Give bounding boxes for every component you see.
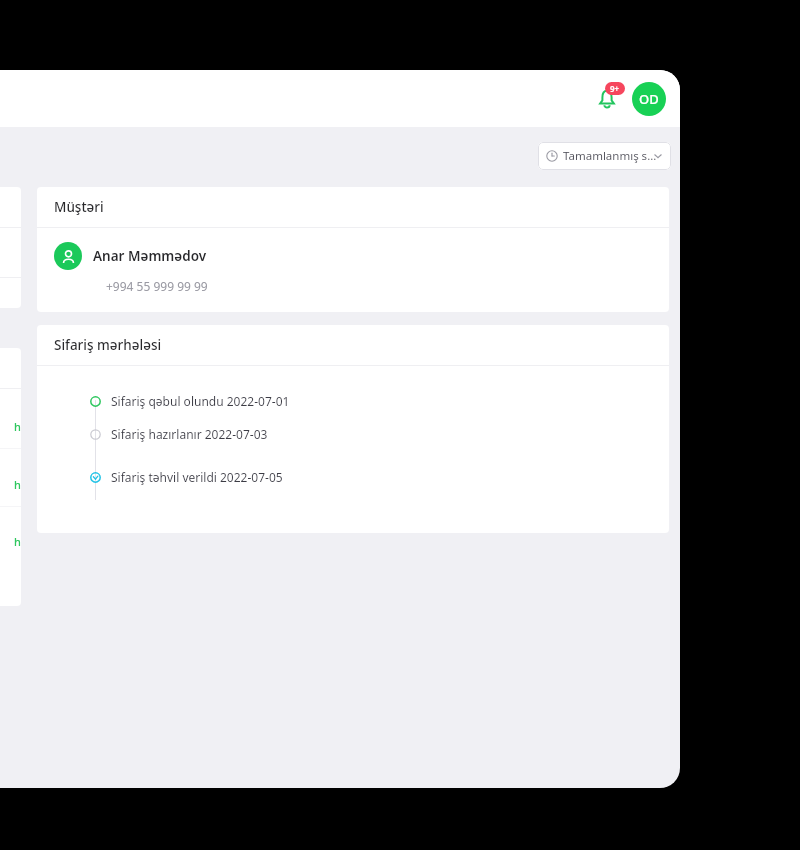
staticText: h bbox=[14, 534, 21, 549]
staticText: OD bbox=[639, 90, 659, 108]
staticText: Tamamlanmış s... bbox=[563, 148, 657, 164]
staticText: Sifariş hazırlanır 2022-07-03 bbox=[111, 426, 268, 442]
button[interactable]: Anar Məmmədov bbox=[54, 242, 669, 294]
button[interactable]: Notifications bbox=[588, 80, 626, 118]
staticText: Müştəri bbox=[54, 198, 104, 216]
staticText: 9+ bbox=[610, 83, 620, 94]
staticText: Sifariş mərhələsi bbox=[54, 336, 162, 354]
staticText: Sifariş qəbul olundu 2022-07-01 bbox=[111, 393, 290, 409]
staticText: +994 55 999 99 99 bbox=[106, 278, 208, 294]
staticText: h bbox=[14, 477, 21, 492]
button[interactable]: Sifariş təhvil verildi 2022-07-05 bbox=[89, 467, 283, 487]
button[interactable]: Tamamlanmış s... bbox=[538, 142, 671, 170]
staticText: h bbox=[14, 419, 21, 434]
staticText: Sifariş təhvil verildi 2022-07-05 bbox=[111, 469, 283, 485]
button[interactable]: Sifariş qəbul olundu 2022-07-01 bbox=[89, 391, 290, 411]
button[interactable]: OD bbox=[632, 82, 666, 116]
staticText: Anar Məmmədov bbox=[93, 247, 207, 265]
button[interactable]: Sifariş hazırlanır 2022-07-03 bbox=[89, 424, 268, 444]
